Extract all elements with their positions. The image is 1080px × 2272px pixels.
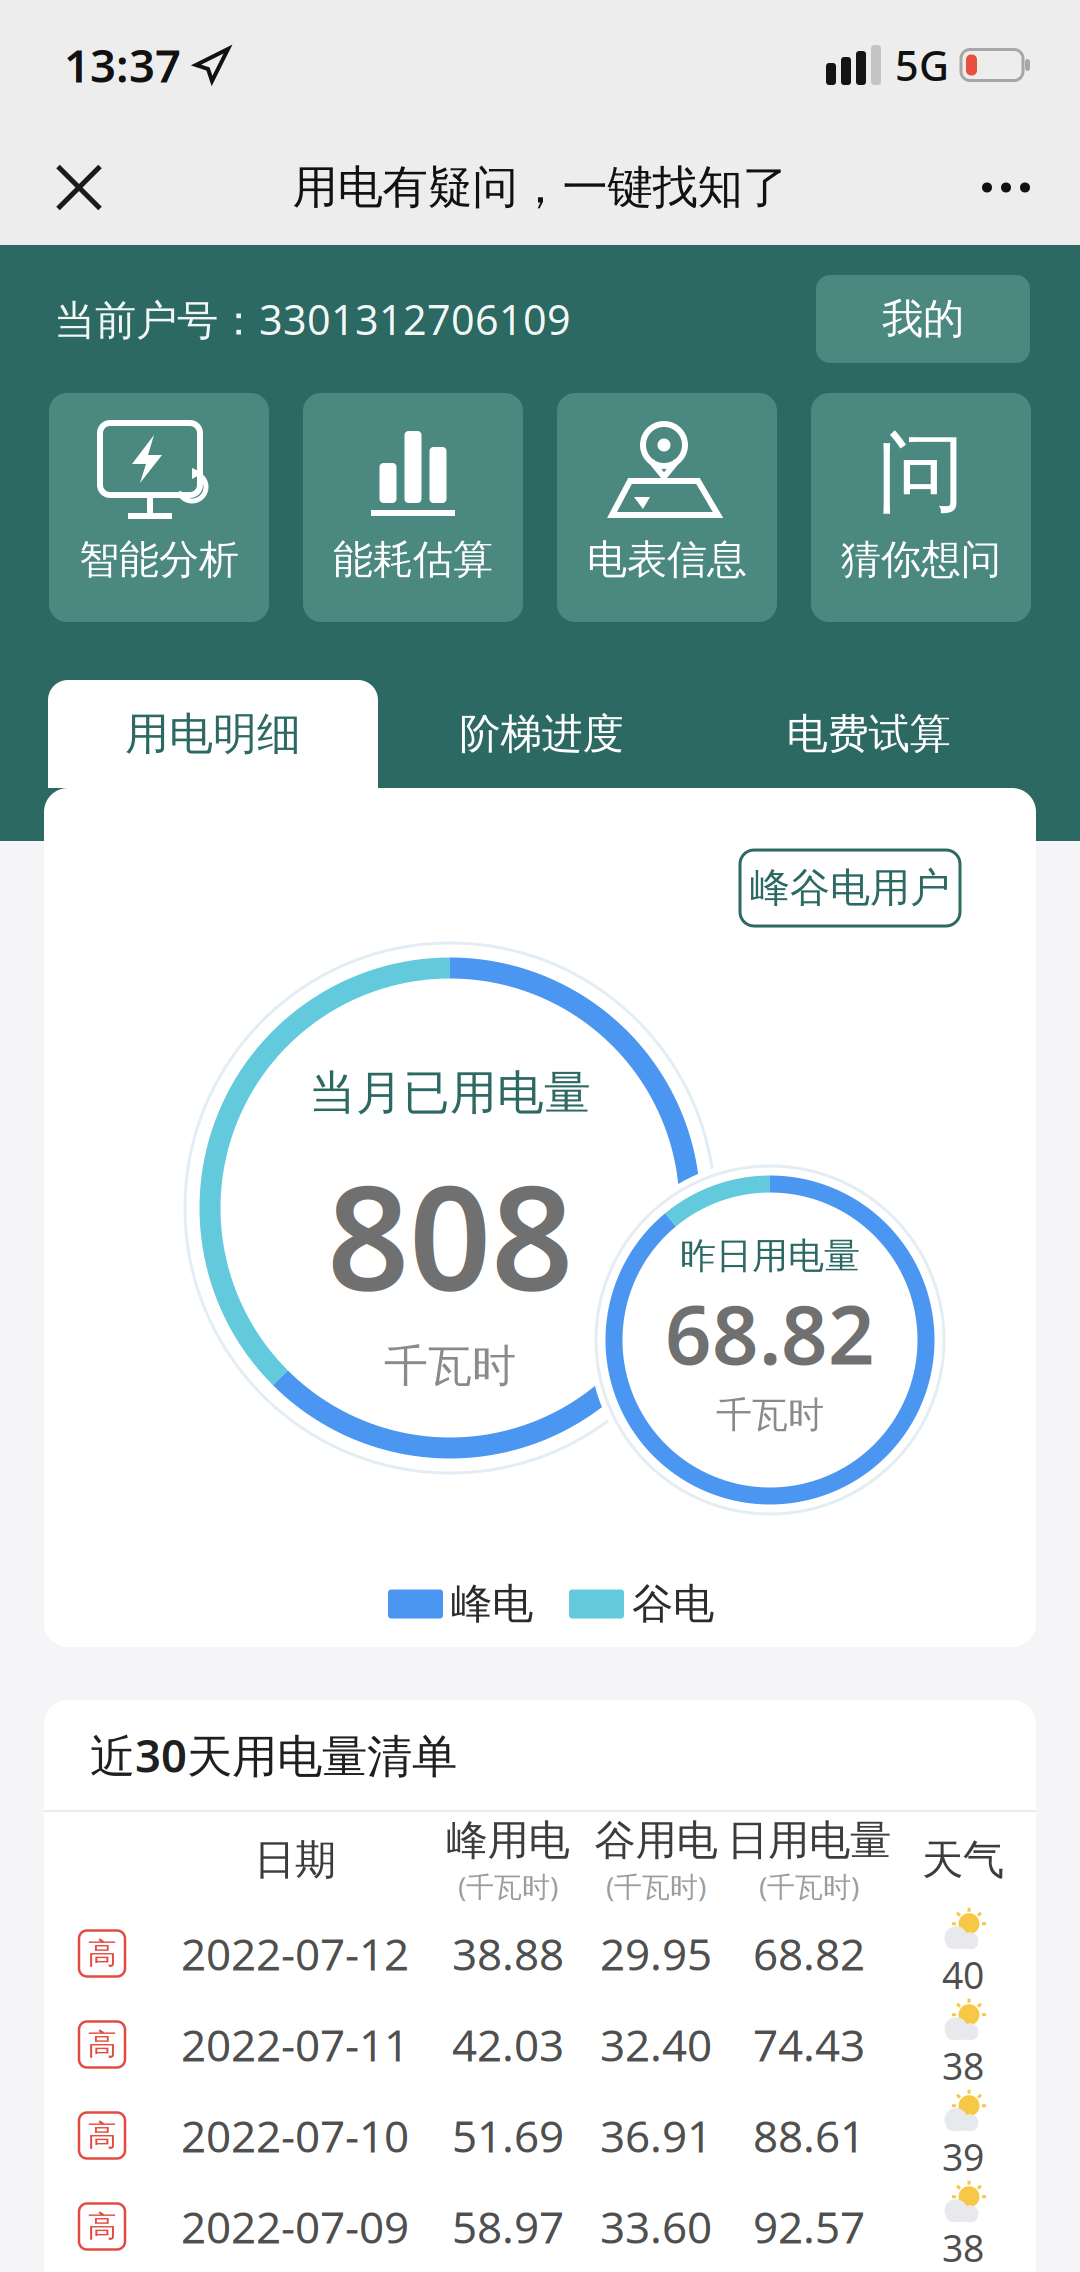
staticText: 68.82 (753, 1924, 865, 1983)
staticText: 2022-07-11 (181, 2015, 409, 2074)
button[interactable]: 我的 (816, 275, 1030, 363)
staticText: 92.57 (753, 2197, 865, 2256)
staticText: 2022-07-09 (181, 2197, 409, 2256)
staticText: 当前户号：3301312706109 (54, 292, 571, 346)
staticText: 谷用电 (594, 1815, 717, 1866)
staticText: 40 (942, 1950, 984, 1999)
staticText: 峰电 (451, 1579, 533, 1629)
staticText: 我的 (882, 294, 964, 344)
staticText: 高 (87, 2026, 116, 2062)
staticText: (千瓦时) (458, 1868, 558, 1905)
staticText: (千瓦时) (759, 1868, 859, 1905)
staticText: 近30天用电量清单 (90, 1725, 457, 1785)
staticText: 峰谷电用户 (750, 863, 950, 912)
button[interactable]: 智能分析 (49, 393, 269, 622)
staticText: 能耗估算 (333, 535, 493, 584)
staticText: 日期 (254, 1835, 336, 1885)
staticText: 13:37 (64, 35, 181, 95)
staticText: 当月已用电量 (309, 1064, 591, 1122)
button[interactable]: 用电明细 (48, 680, 378, 788)
button[interactable]: 峰谷电用户 (740, 850, 960, 926)
staticText: 谷电 (632, 1579, 714, 1629)
staticText: 问 (877, 419, 965, 527)
staticText: 用电明细 (125, 707, 301, 761)
button[interactable]: 阶梯进度 (378, 680, 705, 788)
staticText: 38.88 (452, 1924, 564, 1983)
button[interactable]: 问 (811, 393, 1031, 622)
staticText: 电表信息 (587, 535, 747, 584)
staticText: 88.61 (753, 2106, 865, 2165)
staticText: 32.40 (600, 2015, 712, 2074)
staticText: 电费试算 (786, 709, 950, 759)
staticText: 38 (942, 2041, 984, 2090)
staticText: 千瓦时 (384, 1339, 516, 1393)
staticText: 808 (327, 1139, 573, 1331)
button[interactable]: 能耗估算 (303, 393, 523, 622)
staticText: 用电有疑问，一键找知了 (292, 160, 787, 215)
staticText: 2022-07-10 (181, 2106, 409, 2165)
staticText: 74.43 (753, 2015, 865, 2074)
staticText: 高 (87, 2117, 116, 2153)
staticText: 2022-07-12 (181, 1924, 409, 1983)
staticText: 阶梯进度 (459, 709, 623, 759)
staticText: 36.91 (600, 2106, 712, 2165)
button[interactable]: 更多 (982, 182, 1080, 192)
staticText: 58.97 (452, 2197, 564, 2256)
staticText: 猜你想问 (841, 535, 1001, 584)
staticText: 峰用电 (446, 1815, 569, 1866)
staticText: 51.69 (452, 2106, 564, 2165)
staticText: 33.60 (600, 2197, 712, 2256)
button[interactable]: 电费试算 (705, 680, 1032, 788)
staticText: (千瓦时) (606, 1868, 706, 1905)
staticText: 39 (942, 2132, 984, 2181)
staticText: 日用电量 (727, 1815, 891, 1866)
staticText: 千瓦时 (716, 1393, 824, 1437)
staticText: 高 (87, 2208, 116, 2244)
staticText: 高 (87, 1935, 116, 1971)
button[interactable]: 关闭 (0, 164, 102, 210)
staticText: 天气 (922, 1835, 1004, 1885)
staticText: 昨日用电量 (680, 1234, 860, 1278)
staticText: 42.03 (452, 2015, 564, 2074)
staticText: 29.95 (600, 1924, 712, 1983)
staticText: 38 (942, 2223, 984, 2272)
staticText: 68.82 (665, 1279, 875, 1387)
staticText: 5G (895, 38, 949, 92)
staticText: 智能分析 (79, 535, 239, 584)
button[interactable]: 电表信息 (557, 393, 777, 622)
